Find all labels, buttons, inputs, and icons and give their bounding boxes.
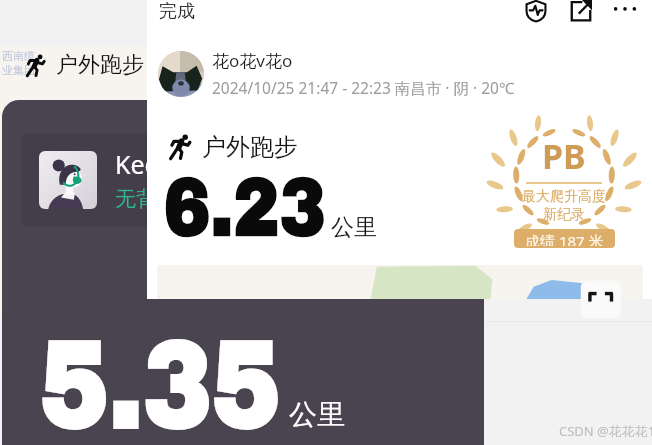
staticText: 6.23 xyxy=(164,163,326,252)
staticText: 业集团 xyxy=(2,63,35,77)
staticText: 公里 xyxy=(331,213,377,242)
staticText: 花o花v花o xyxy=(212,49,293,72)
staticText: CSDN @花花花1 xyxy=(559,422,652,440)
staticText: 公里 xyxy=(289,397,345,432)
staticText: PB xyxy=(542,133,586,179)
staticText: 户外跑步 xyxy=(56,51,144,79)
staticText: 新纪录 xyxy=(543,206,585,224)
staticText: 最大爬升高度 xyxy=(522,188,606,206)
button[interactable]: More options xyxy=(610,0,640,26)
staticText: 西南缆 xyxy=(2,49,35,63)
staticText: Keep xyxy=(115,147,175,181)
staticText: 成绩 187 米 xyxy=(525,231,604,246)
staticText: 2024/10/25 21:47 - 22:23 南昌市 · 阴 · 20℃ xyxy=(212,77,515,98)
button[interactable]: Share xyxy=(566,0,596,26)
staticText: 完成 xyxy=(159,0,195,23)
button[interactable]: Health data xyxy=(521,0,551,26)
staticText: 无背景 xyxy=(115,186,178,212)
staticText: 户外跑步 xyxy=(202,132,298,162)
button[interactable]: 完成 xyxy=(152,0,202,27)
staticText: 5.35 xyxy=(40,320,281,445)
